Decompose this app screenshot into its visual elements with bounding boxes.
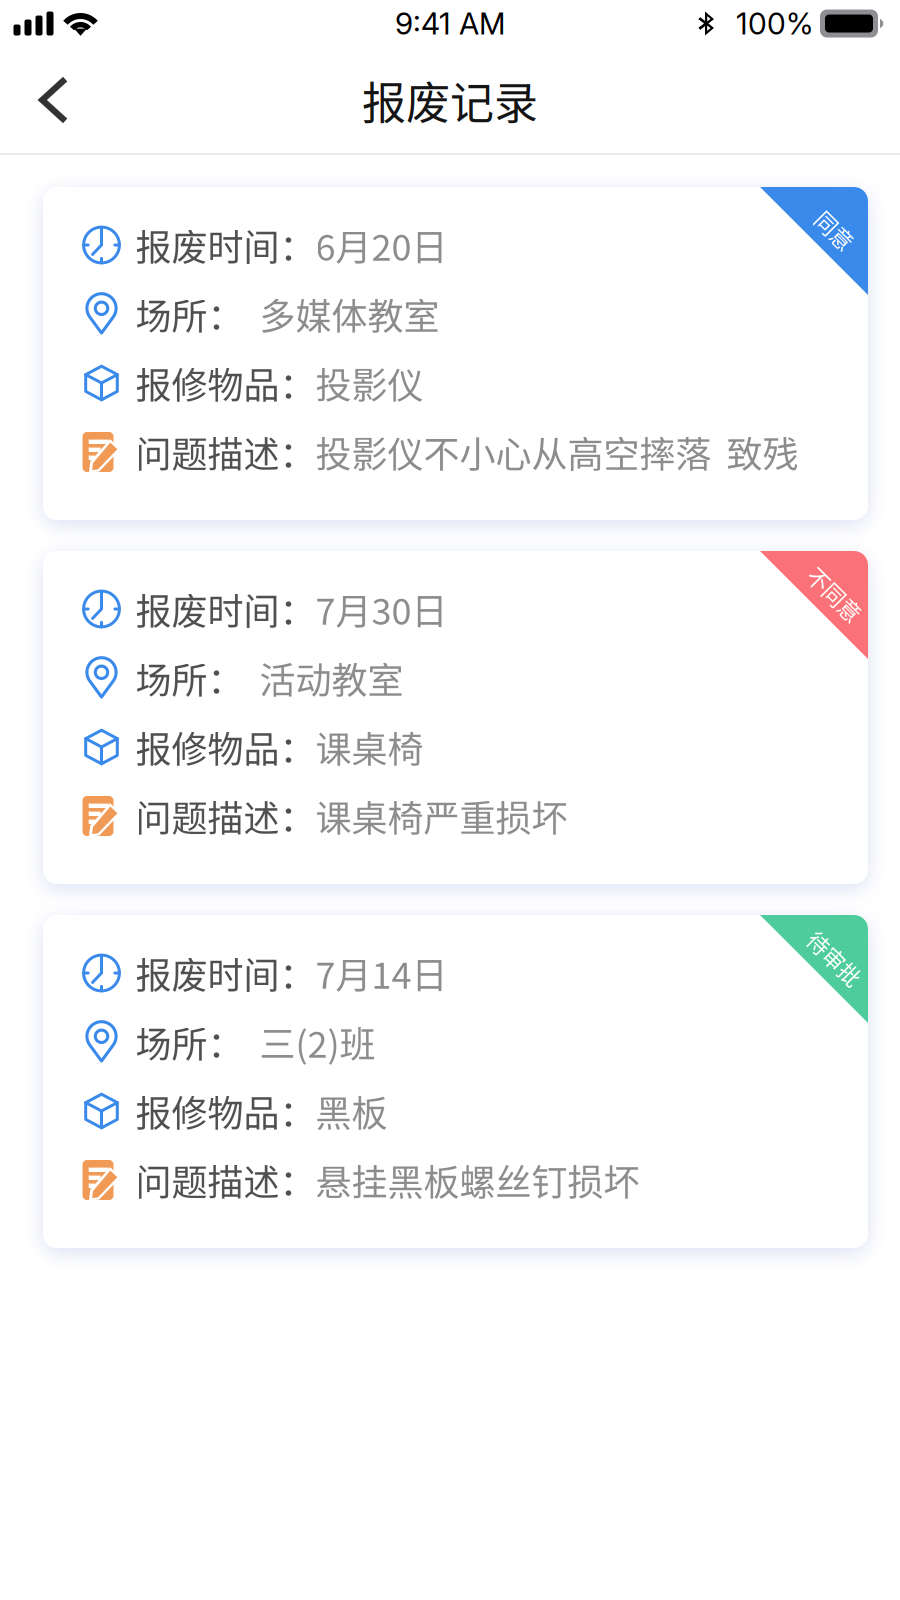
staticText: 不同意 [802, 578, 868, 610]
staticText: 报废时间： [135, 947, 315, 999]
staticText: 100% [736, 5, 813, 42]
staticText: 活动教室 [243, 652, 403, 704]
staticText: 问题描述： [135, 426, 315, 478]
button[interactable]: 报废时间： [43, 187, 868, 520]
staticText: 场所： [135, 1016, 243, 1068]
staticText: 悬挂黑板螺丝钉损坏 [315, 1154, 639, 1206]
staticText: 场所： [135, 652, 243, 704]
button[interactable]: Back [0, 53, 91, 147]
staticText: 报修物品： [135, 721, 315, 773]
staticText: 问题描述： [135, 790, 315, 842]
staticText: 问题描述： [135, 1154, 315, 1206]
staticText: 7月30日 [315, 583, 447, 635]
staticText: 课桌椅 [315, 721, 423, 773]
button[interactable]: 报废时间： [43, 551, 868, 884]
staticText: 报修物品： [135, 357, 315, 409]
staticText: 投影仪 [315, 357, 423, 409]
staticText: 报修物品： [135, 1085, 315, 1137]
staticText: 三(2)班 [243, 1016, 375, 1068]
staticText: 报废时间： [135, 583, 315, 635]
staticText: 场所： [135, 288, 243, 340]
staticText: 报废记录 [362, 68, 538, 132]
staticText: 黑板 [315, 1085, 387, 1137]
staticText: 多媒体教室 [243, 288, 439, 340]
staticText: 7月14日 [315, 947, 447, 999]
button[interactable]: 报废时间： [43, 915, 868, 1248]
staticText: 同意 [813, 214, 857, 246]
staticText: 投影仪不小心从高空摔落 致残 [315, 426, 798, 478]
staticText: 课桌椅严重损坏 [315, 790, 567, 842]
staticText: 待审批 [802, 942, 868, 974]
staticText: 报废时间： [135, 219, 315, 271]
staticText: 6月20日 [315, 219, 447, 271]
staticText: 9:41 AM [395, 5, 505, 42]
